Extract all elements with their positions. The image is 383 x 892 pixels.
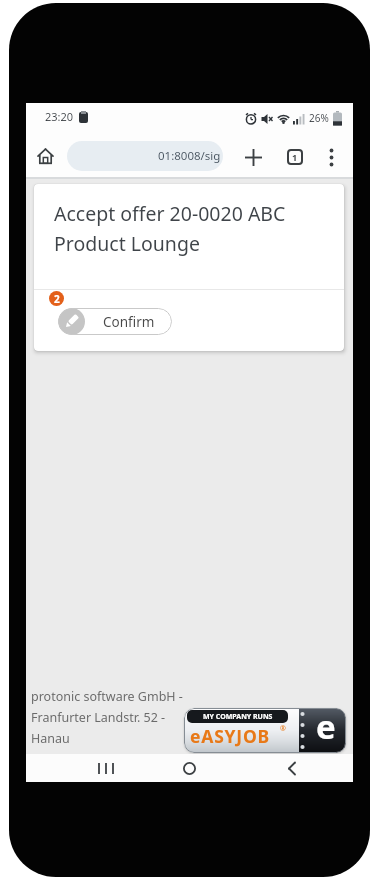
staticText: 01:8008/sig — [158, 148, 221, 164]
button[interactable]: 01:8008/sig — [67, 141, 223, 171]
staticText: 1 — [292, 151, 298, 163]
button[interactable]: 1 — [287, 149, 303, 165]
button[interactable]: MY COMPANY RUNS — [184, 708, 346, 753]
button[interactable] — [245, 149, 262, 166]
staticText: Confirm — [103, 313, 155, 331]
staticText: 23:20 — [45, 109, 74, 124]
staticText: ® — [280, 724, 286, 734]
button[interactable] — [288, 762, 296, 775]
staticText: 26% — [309, 111, 329, 125]
staticText: eASYJOB — [190, 724, 271, 748]
button[interactable] — [37, 148, 54, 165]
button[interactable] — [98, 763, 114, 774]
staticText: Accept offer 20-0020 ABC Product Lounge — [54, 200, 286, 257]
button[interactable] — [328, 148, 335, 167]
staticText: 2 — [54, 292, 60, 306]
button[interactable] — [183, 762, 196, 775]
staticText: protonic software GmbH - Franfurter Land… — [31, 688, 183, 747]
staticText: e — [316, 708, 336, 749]
button[interactable]: Confirm — [58, 308, 172, 335]
staticText: MY COMPANY RUNS — [203, 712, 273, 722]
